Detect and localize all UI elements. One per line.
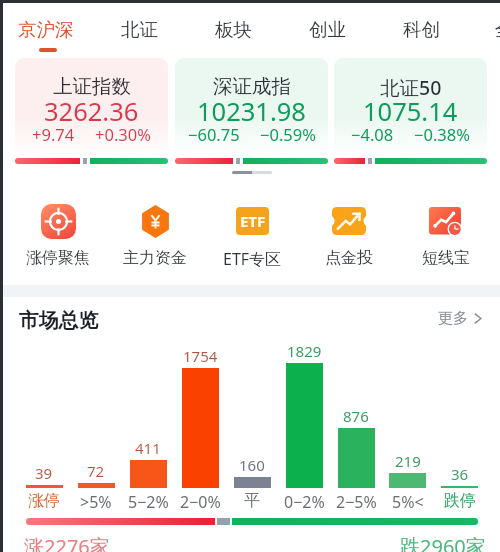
staticText: 深证成指 [213, 74, 291, 99]
other: 主力资金 [140, 202, 171, 240]
staticText: 主力资金 [123, 248, 187, 268]
staticText: 北证 [121, 18, 158, 41]
button[interactable]: 北证 [120, 8, 158, 52]
staticText: +9.74 [32, 123, 75, 145]
staticText: −4.08 [351, 123, 394, 145]
staticText: 1829 [287, 341, 322, 361]
other: 短线宝 [429, 202, 463, 240]
button[interactable]: 上证指数 [15, 58, 168, 156]
staticText: 5−2% [128, 491, 169, 513]
staticText: 短线宝 [422, 248, 470, 268]
other: 点金投 [332, 202, 366, 240]
other: 涨停聚焦 [41, 202, 76, 240]
staticText: 板块 [215, 18, 252, 41]
button[interactable]: 深证成指 [175, 58, 328, 156]
staticText: 跌2960家 [400, 533, 486, 552]
staticText: 0−2% [284, 491, 325, 513]
staticText: 1075.14 [363, 94, 458, 129]
staticText: >5% [80, 491, 112, 513]
staticText: 5%< [392, 491, 424, 513]
staticText: −60.75 [188, 123, 240, 145]
staticText: 市场总览 [19, 308, 99, 333]
staticText: 涨停聚焦 [26, 248, 90, 268]
staticText: 1754 [183, 346, 218, 366]
button[interactable]: 全部 [494, 8, 500, 52]
staticText: 创业 [309, 18, 346, 41]
staticText: 2−5% [336, 491, 377, 513]
staticText: 平 [244, 491, 260, 511]
staticText: 点金投 [325, 248, 373, 268]
staticText: 411 [135, 438, 161, 458]
staticText: 涨2276家 [24, 533, 110, 552]
staticText: 876 [343, 406, 369, 426]
button[interactable]: 主力资金 [107, 202, 203, 268]
staticText: 北证50 [380, 74, 442, 101]
button[interactable]: 创业 [308, 8, 346, 52]
button[interactable]: 京沪深 [17, 8, 74, 52]
staticText: 上证指数 [53, 74, 131, 99]
staticText: 跌停 [444, 491, 476, 511]
staticText: ETF [240, 211, 266, 231]
button[interactable]: 北证50 [334, 58, 487, 156]
staticText: −0.38% [414, 123, 470, 145]
staticText: 涨停 [28, 491, 60, 511]
staticText: 219 [395, 451, 421, 471]
staticText: 160 [239, 455, 265, 475]
button[interactable]: 短线宝 [398, 202, 494, 268]
button[interactable]: 点金投 [301, 202, 397, 268]
staticText: 2−0% [180, 491, 221, 513]
staticText: 全部 [495, 18, 500, 41]
staticText: +0.30% [95, 123, 151, 145]
button[interactable]: 板块 [214, 8, 252, 52]
other: ETF专区 [236, 202, 269, 240]
staticText: 39 [35, 463, 53, 483]
staticText: 72 [87, 461, 105, 481]
staticText: 科创 [403, 18, 440, 41]
staticText: 10231.98 [197, 94, 306, 129]
button[interactable]: ETF专区 [204, 202, 300, 270]
staticText: 36 [451, 464, 469, 484]
staticText: 京沪深 [18, 18, 74, 41]
staticText: −0.59% [260, 123, 316, 145]
button[interactable]: 更多 [438, 309, 482, 328]
button[interactable]: 市场总览 [19, 308, 99, 333]
staticText: 更多 [438, 309, 468, 328]
staticText: ETF专区 [223, 248, 282, 270]
staticText: 3262.36 [44, 94, 139, 129]
button[interactable]: 涨停聚焦 [10, 202, 106, 268]
button[interactable]: 科创 [402, 8, 440, 52]
